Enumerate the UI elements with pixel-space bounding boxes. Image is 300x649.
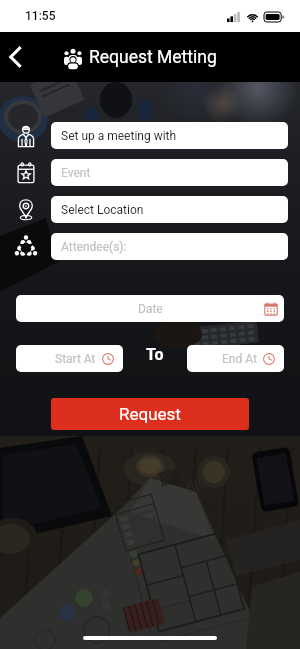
button[interactable]: Attendee(s): bbox=[51, 233, 288, 260]
button[interactable]: Start At bbox=[16, 345, 123, 372]
staticText: Date bbox=[138, 302, 163, 316]
staticText: 11:55 bbox=[25, 9, 56, 23]
staticText: Request bbox=[119, 404, 181, 424]
button[interactable]: Request bbox=[51, 398, 249, 430]
staticText: Event bbox=[61, 166, 91, 180]
staticText: Select Location bbox=[61, 203, 144, 217]
button[interactable]: Date bbox=[16, 295, 284, 322]
staticText: Set up a meeting with bbox=[61, 129, 177, 143]
button[interactable]: Select Location bbox=[51, 196, 288, 223]
staticText: Start At bbox=[55, 352, 96, 366]
button[interactable]: Set up a meeting with bbox=[51, 122, 288, 149]
staticText: End At bbox=[222, 352, 257, 366]
button[interactable]: End At bbox=[187, 345, 284, 372]
button[interactable]: Back bbox=[0, 32, 30, 82]
staticText: Attendee(s): bbox=[61, 240, 127, 254]
staticText: Request Metting bbox=[89, 47, 217, 68]
button[interactable]: Event bbox=[51, 159, 288, 186]
staticText: To bbox=[146, 345, 164, 364]
